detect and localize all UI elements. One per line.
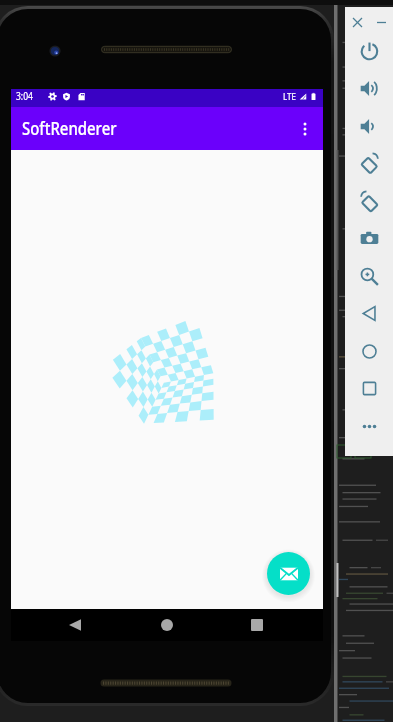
- staticText: LTE: [283, 91, 296, 102]
- button[interactable]: Minimize: [369, 11, 393, 33]
- button[interactable]: Overview: [345, 370, 393, 406]
- button[interactable]: Volume down: [345, 108, 393, 144]
- staticText: 3:04: [16, 89, 33, 103]
- button[interactable]: Power: [345, 33, 393, 69]
- staticText: SoftRenderer: [22, 116, 117, 141]
- button[interactable]: Take screenshot: [345, 220, 393, 256]
- button[interactable]: More: [345, 408, 393, 444]
- button[interactable]: Rotate left: [345, 145, 393, 181]
- button[interactable]: Rotate right: [345, 183, 393, 219]
- button[interactable]: Recent apps: [246, 614, 268, 636]
- button[interactable]: Back: [345, 295, 393, 331]
- button[interactable]: Volume up: [345, 70, 393, 106]
- button[interactable]: Compose message: [267, 552, 310, 595]
- button[interactable]: Back: [64, 614, 86, 636]
- button[interactable]: Close: [345, 11, 369, 33]
- button[interactable]: Zoom: [345, 258, 393, 294]
- button[interactable]: Home: [345, 333, 393, 369]
- button[interactable]: Home: [156, 614, 178, 636]
- button[interactable]: More options: [287, 111, 323, 147]
